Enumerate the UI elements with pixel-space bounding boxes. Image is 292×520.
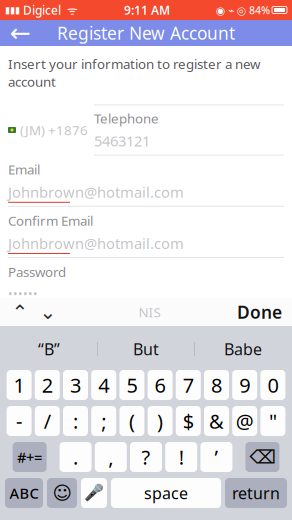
staticText: " <box>269 408 277 434</box>
button[interactable]: 1 <box>7 370 32 400</box>
staticText: @ <box>236 408 254 434</box>
button[interactable]: , <box>95 442 127 472</box>
button[interactable]: @ <box>232 406 257 436</box>
button[interactable]: Previous field <box>6 299 34 325</box>
button[interactable]: 4 <box>91 370 116 400</box>
button[interactable]: Password <box>0 258 284 306</box>
button[interactable]: 2 <box>35 370 60 400</box>
staticText: 9 <box>239 372 250 398</box>
staticText: ▮▮▮ <box>5 5 20 15</box>
button[interactable]: NIS <box>0 355 284 400</box>
staticText: Johnbrown@hotmail.com <box>8 233 184 253</box>
staticText: ⌄ <box>39 301 56 323</box>
button[interactable]: Email <box>0 156 284 206</box>
button[interactable]: Next field <box>34 299 62 325</box>
button[interactable]: Delete <box>245 442 279 472</box>
staticText: 0 <box>267 372 278 398</box>
button[interactable]: Confirm Password <box>0 307 284 354</box>
button[interactable]: Back <box>0 19 40 47</box>
staticText: , <box>108 444 113 470</box>
staticText: 3 <box>70 372 81 398</box>
staticText: Confirm Email <box>8 212 93 229</box>
staticText: 🎤 <box>84 484 104 502</box>
staticText: Insert your information to register a ne… <box>8 55 260 90</box>
staticText: B <box>8 382 17 400</box>
staticText: 7 <box>183 372 194 398</box>
staticText: NIS <box>8 360 30 378</box>
staticText: NIS <box>138 303 160 321</box>
button[interactable]: ! <box>165 442 197 472</box>
button[interactable]: : <box>63 406 88 436</box>
button[interactable]: Emoji keyboard <box>47 478 77 508</box>
staticText: ← <box>9 19 30 47</box>
button[interactable]: Dictation <box>81 478 107 508</box>
button[interactable]: space <box>111 478 221 508</box>
staticText: ᯤ <box>61 2 78 18</box>
staticText: & <box>209 408 224 434</box>
button[interactable]: $ <box>176 406 201 436</box>
button[interactable]: Confirm Email <box>0 207 284 257</box>
staticText: •••••• <box>8 286 38 302</box>
button[interactable]: But <box>98 334 194 364</box>
button[interactable]: return <box>225 478 287 508</box>
staticText: 5 <box>126 372 137 398</box>
staticText: Confirm Password <box>8 312 119 329</box>
button[interactable]: & <box>204 406 229 436</box>
staticText: 8 <box>211 372 222 398</box>
staticText: . <box>73 444 78 470</box>
staticText: 1 <box>14 372 25 398</box>
staticText: Digicel <box>20 2 61 18</box>
staticText: Done <box>237 300 282 323</box>
button[interactable]: Done <box>237 300 292 323</box>
staticText: : <box>73 408 78 434</box>
staticText: ! <box>179 444 184 470</box>
staticText: Johnbrown@hotmail.com <box>8 182 184 202</box>
staticText: 6 <box>155 372 166 398</box>
button[interactable]: ; <box>91 406 116 436</box>
button[interactable]: #+= <box>13 442 47 472</box>
button[interactable]: 3 <box>63 370 88 400</box>
button[interactable]: " <box>260 406 285 436</box>
button[interactable]: ’ <box>200 442 232 472</box>
button[interactable]: - <box>7 406 32 436</box>
staticText: But <box>133 338 159 360</box>
button[interactable]: ) <box>148 406 173 436</box>
staticText: ) <box>157 408 163 434</box>
staticText: ☺ <box>52 482 71 504</box>
staticText: 5463121 <box>94 131 150 151</box>
staticText: 4 <box>98 372 109 398</box>
button[interactable]: 5 <box>119 370 144 400</box>
button[interactable]: 6 <box>148 370 173 400</box>
staticText: 9:11 AM <box>124 2 170 18</box>
staticText: ’ <box>214 444 218 470</box>
staticText: Password <box>8 263 66 281</box>
staticText: ; <box>101 408 106 434</box>
button[interactable]: Babe <box>195 334 291 364</box>
staticText: Telephone <box>94 109 159 127</box>
button[interactable]: . <box>60 442 92 472</box>
staticText: ABC <box>9 483 38 503</box>
button[interactable]: ? <box>130 442 162 472</box>
staticText: 2 <box>42 372 53 398</box>
staticText: Babe <box>224 338 262 360</box>
button[interactable]: “B” <box>1 334 97 364</box>
button[interactable]: ( <box>119 406 144 436</box>
button[interactable]: / <box>35 406 60 436</box>
staticText: Register New Account <box>57 21 235 44</box>
button[interactable]: 9 <box>232 370 257 400</box>
button[interactable]: 7 <box>176 370 201 400</box>
staticText: ⌫ <box>249 446 275 468</box>
staticText: Email <box>8 161 40 178</box>
staticText: ( <box>129 408 135 434</box>
staticText: return <box>232 482 280 504</box>
button[interactable]: 8 <box>204 370 229 400</box>
staticText: “B” <box>38 338 60 360</box>
button[interactable]: 0 <box>260 370 285 400</box>
staticText: (JM) +1876 <box>20 121 88 139</box>
button[interactable]: ABC <box>5 478 43 508</box>
staticText: space <box>144 482 188 504</box>
staticText: $ <box>183 408 194 434</box>
staticText: ⌃ <box>11 301 28 323</box>
button[interactable]: Select country code <box>0 113 94 147</box>
staticText: - <box>16 408 22 434</box>
